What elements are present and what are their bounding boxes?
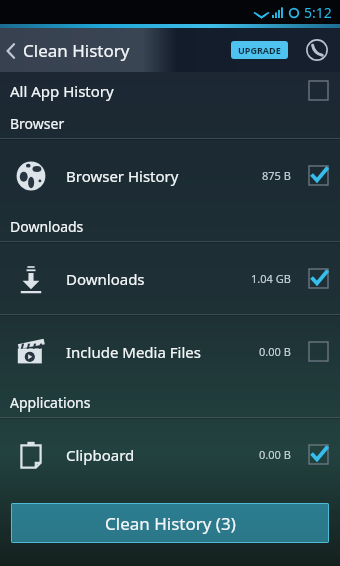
button[interactable]: Clean History: [0, 33, 140, 68]
staticText: Applications: [10, 393, 91, 412]
staticText: Browser: [10, 114, 65, 133]
staticText: Include Media Files: [66, 342, 259, 362]
button[interactable]: Clean History (3): [11, 503, 329, 543]
staticText: Clean History (3): [105, 512, 236, 535]
staticText: 5:12: [304, 3, 332, 22]
staticText: Downloads: [10, 217, 84, 236]
button[interactable]: UPGRADE: [231, 41, 288, 59]
staticText: All App History: [10, 81, 114, 101]
button[interactable]: Include Media Files: [0, 316, 340, 387]
staticText: 0.00 B: [259, 447, 291, 462]
staticText: 1.04 GB: [251, 271, 291, 286]
button[interactable]: All App History: [0, 73, 340, 108]
button[interactable]: Downloads: [0, 243, 340, 314]
staticText: Downloads: [66, 269, 251, 289]
button[interactable]: Browser History: [0, 140, 340, 211]
button[interactable]: Call support: [300, 33, 334, 67]
staticText: Clean History: [23, 39, 130, 62]
staticText: UPGRADE: [238, 44, 281, 56]
staticText: 875 B: [262, 168, 291, 183]
staticText: Browser History: [66, 166, 262, 186]
staticText: 0.00 B: [259, 344, 291, 359]
button[interactable]: Clipboard: [0, 419, 340, 490]
staticText: Clipboard: [66, 445, 259, 465]
